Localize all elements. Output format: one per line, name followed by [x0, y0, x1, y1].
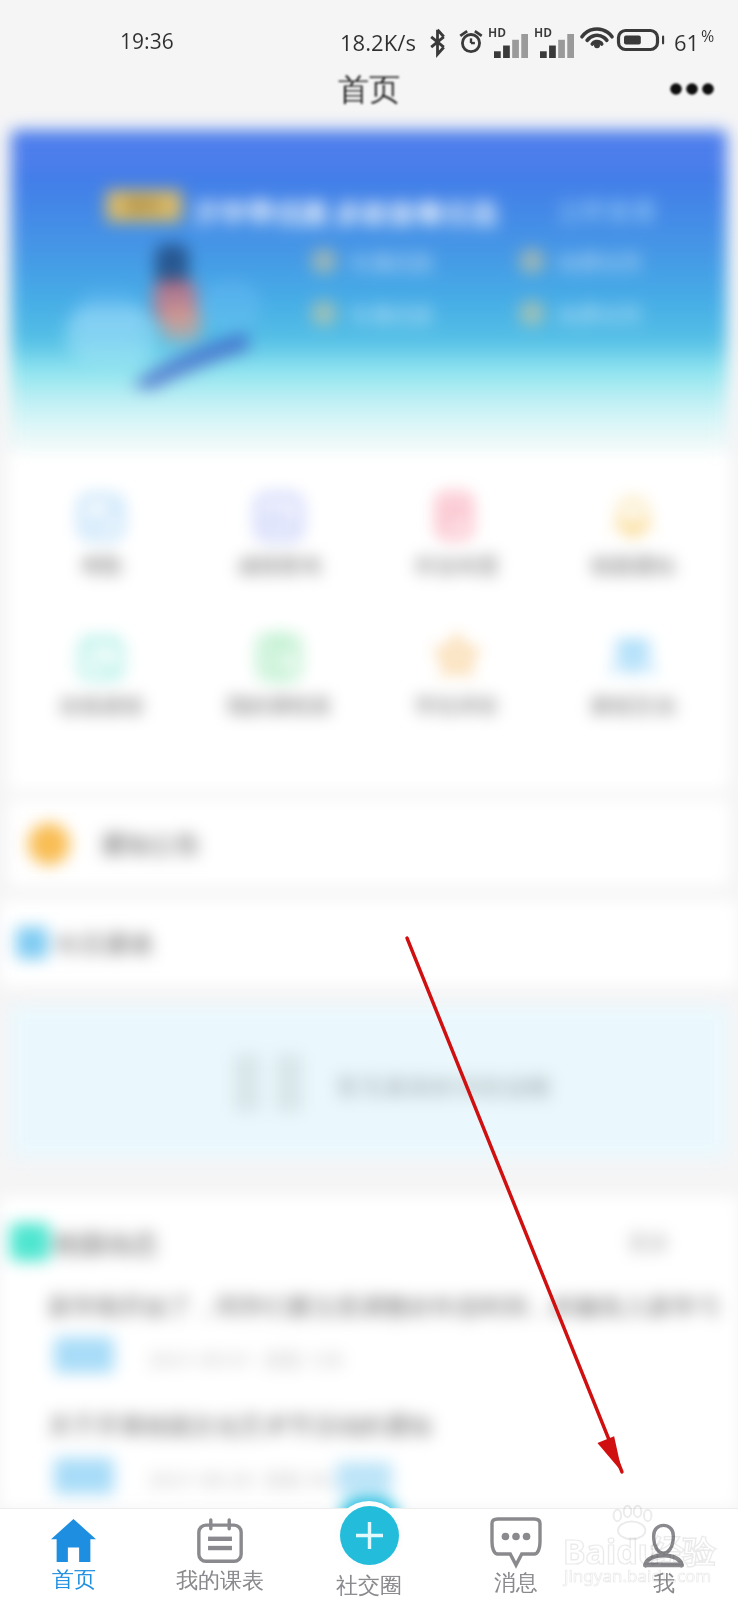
staticText: 作业布置 — [387, 553, 527, 579]
button[interactable]: 首页 — [7, 1508, 139, 1600]
staticText: 更多 — [628, 1230, 670, 1256]
button[interactable] — [0, 1196, 738, 1508]
button[interactable]: 消息 — [450, 1508, 582, 1600]
staticText: HD — [534, 24, 552, 40]
button[interactable]: More options — [658, 66, 726, 112]
button[interactable]: 家校互动 — [563, 623, 703, 739]
staticText: 成绩查询 — [209, 553, 349, 579]
staticText: 校园动态 — [54, 1228, 158, 1261]
staticText: 18.2K/s — [340, 27, 416, 57]
button[interactable]: 学生评价 — [387, 623, 527, 739]
button[interactable]: 我的课表 — [154, 1508, 286, 1600]
staticText: HD — [488, 24, 506, 40]
staticText: % — [701, 25, 715, 47]
button[interactable]: 在线请假 — [31, 623, 171, 739]
staticText: 经验 — [651, 1532, 715, 1572]
staticText: 19:36 — [120, 27, 174, 56]
staticText: 2021-08-28 浏览 96 — [148, 1466, 331, 1493]
staticText: 学生评价 — [387, 693, 527, 719]
button[interactable]: 我的课程表 — [209, 623, 349, 739]
staticText: 关于开展校园文化艺术节活动的通知 — [48, 1411, 432, 1441]
staticText: 免费试用 — [557, 302, 641, 328]
staticText: 暂无最新的消息提醒 — [336, 1072, 552, 1102]
button[interactable]: 校园通知 — [563, 483, 703, 599]
staticText: 限时 — [126, 195, 162, 218]
staticText: 免费试用 — [557, 250, 641, 276]
staticText: Baidu — [563, 1528, 660, 1574]
button[interactable]: 作业布置 — [387, 483, 527, 599]
staticText: 社交圈 — [336, 1572, 402, 1600]
staticText: 61 — [674, 27, 700, 57]
button[interactable]: 成绩查询 — [209, 483, 349, 599]
button[interactable]: 限时 — [11, 130, 727, 455]
staticText: 考勤 — [31, 553, 171, 579]
staticText: 我 — [653, 1570, 675, 1598]
staticText: 通知公告 — [100, 829, 200, 860]
staticText: 立即查看 — [557, 196, 657, 227]
staticText: 在线请假 — [31, 693, 171, 719]
staticText: 开学季优惠 多款套餐任选 — [193, 194, 498, 231]
button[interactable]: 通知公告 — [8, 800, 730, 886]
button[interactable]: 我 — [597, 1508, 729, 1600]
staticText: 新学期开始了，同学们要注意调整好作息时间，积极投入新学习 — [48, 1292, 720, 1322]
button[interactable]: 考勤 — [31, 483, 171, 599]
staticText: 我的课表 — [176, 1567, 264, 1595]
staticText: 专属优惠 — [349, 250, 433, 276]
staticText: 家校互动 — [563, 693, 703, 719]
button[interactable]: 首页 — [310, 64, 428, 114]
button[interactable]: 暂无最新的消息提醒 — [10, 1006, 728, 1158]
staticText: 今日课表 — [54, 929, 154, 960]
staticText: 首页 — [52, 1566, 96, 1594]
staticText: 消息 — [494, 1569, 538, 1597]
button[interactable]: 今日课表 — [0, 900, 738, 986]
staticText: 首页 — [338, 70, 400, 109]
staticText: 校园通知 — [563, 553, 703, 579]
staticText: 我的课程表 — [209, 693, 349, 719]
staticText: 专属优惠 — [349, 302, 433, 328]
staticText: jingyan.baidu.com — [564, 1564, 712, 1587]
button[interactable]: 社交圈 — [303, 1501, 435, 1593]
